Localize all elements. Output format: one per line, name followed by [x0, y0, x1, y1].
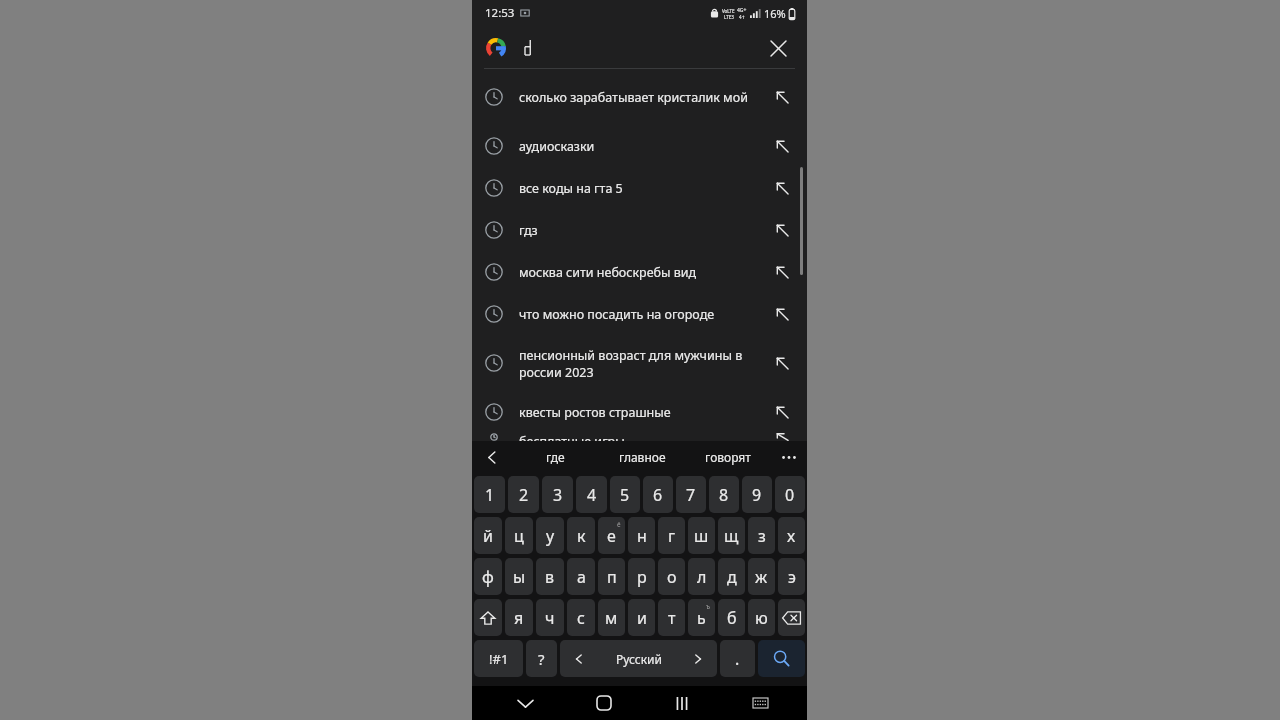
button[interactable]: Home — [565, 686, 643, 720]
staticText: о — [667, 566, 677, 588]
button[interactable]: москва сити небоскребы вид — [472, 251, 807, 293]
staticText: л — [697, 566, 707, 588]
button[interactable]: 1 — [474, 476, 505, 513]
staticText: а — [577, 566, 586, 588]
button[interactable]: 8 — [709, 476, 739, 513]
button[interactable]: что можно посадить на огороде — [472, 293, 807, 335]
staticText: у — [546, 525, 555, 547]
button[interactable]: п — [598, 558, 625, 595]
staticText: ф — [482, 566, 494, 588]
button[interactable]: Insert suggestion — [769, 350, 795, 376]
button[interactable]: Insert suggestion — [769, 301, 795, 327]
staticText: 8 — [719, 484, 729, 506]
button[interactable]: Insert suggestion — [769, 259, 795, 285]
button[interactable]: 2 — [508, 476, 539, 513]
button[interactable]: Recent apps — [643, 686, 721, 720]
staticText: главное — [619, 449, 666, 465]
staticText: все коды на гта 5 — [519, 180, 623, 197]
staticText: бесплатные игры — [519, 433, 625, 441]
staticText: пенсионный возраст для мужчины в россии … — [519, 347, 761, 380]
staticText: 7 — [686, 484, 696, 506]
button[interactable]: Insert suggestion — [769, 217, 795, 243]
staticText: ч — [545, 607, 555, 629]
button[interactable]: Insert suggestion — [769, 399, 795, 425]
button[interactable]: ш — [688, 517, 715, 554]
button[interactable]: 6 — [643, 476, 673, 513]
button[interactable]: з — [748, 517, 775, 554]
button[interactable]: 0 — [775, 476, 805, 513]
button[interactable]: ж — [748, 558, 775, 595]
button[interactable]: все коды на гта 5 — [472, 167, 807, 209]
button[interactable]: й — [474, 517, 502, 554]
button[interactable]: р — [628, 558, 655, 595]
staticText: 4G+ — [737, 7, 747, 14]
button[interactable]: 9 — [742, 476, 772, 513]
staticText: з — [758, 525, 766, 547]
button[interactable]: Previous — [472, 441, 512, 473]
staticText: я — [514, 607, 524, 629]
button[interactable]: пенсионный возраст для мужчины в россии … — [472, 335, 807, 391]
button[interactable]: д — [718, 558, 745, 595]
button[interactable]: Backspace — [778, 599, 805, 636]
button[interactable]: Insert suggestion — [769, 84, 795, 110]
button[interactable]: Insert suggestion — [769, 133, 795, 159]
button[interactable]: э — [778, 558, 805, 595]
staticText: й — [483, 525, 493, 547]
button[interactable]: More options — [771, 441, 807, 473]
button[interactable]: гдз — [472, 209, 807, 251]
button[interactable]: ы — [505, 558, 533, 595]
button[interactable]: щ — [718, 517, 745, 554]
button[interactable]: с — [567, 599, 595, 636]
button[interactable]: бесплатные игры — [472, 433, 807, 441]
button[interactable]: н — [628, 517, 655, 554]
button[interactable]: у — [536, 517, 564, 554]
button[interactable]: . — [720, 640, 755, 677]
button[interactable]: о — [658, 558, 685, 595]
button[interactable]: и — [628, 599, 655, 636]
button[interactable]: 3 — [542, 476, 573, 513]
button[interactable]: ф — [474, 558, 502, 595]
button[interactable]: а — [567, 558, 595, 595]
button[interactable]: сколько зарабатывает кристалик мой — [472, 69, 807, 125]
staticText: щ — [724, 525, 739, 547]
button[interactable]: Clear — [761, 31, 795, 65]
button[interactable]: л — [688, 558, 715, 595]
button[interactable]: Insert suggestion — [769, 433, 795, 441]
button[interactable]: Keyboard layout — [721, 686, 799, 720]
button[interactable]: Insert suggestion — [769, 175, 795, 201]
staticText: 9 — [752, 484, 762, 506]
button[interactable]: ь — [688, 599, 715, 636]
button[interactable]: Shift — [474, 599, 502, 636]
button[interactable]: говорят — [685, 441, 771, 473]
staticText: 0 — [785, 484, 795, 506]
button[interactable]: ч — [536, 599, 564, 636]
button[interactable]: в — [536, 558, 564, 595]
button[interactable]: 7 — [676, 476, 706, 513]
button[interactable]: 4 — [576, 476, 607, 513]
button[interactable]: г — [658, 517, 685, 554]
button[interactable]: Hide keyboard — [486, 686, 565, 720]
button[interactable]: !#1 — [474, 640, 523, 677]
button[interactable]: е — [598, 517, 625, 554]
staticText: и — [637, 607, 647, 629]
staticText: ж — [755, 566, 768, 588]
button[interactable]: ю — [748, 599, 775, 636]
button[interactable]: Русский — [560, 640, 717, 677]
button[interactable]: ? — [526, 640, 557, 677]
button[interactable]: где — [512, 441, 599, 473]
button[interactable]: т — [658, 599, 685, 636]
button[interactable]: я — [505, 599, 533, 636]
button[interactable]: х — [778, 517, 805, 554]
button[interactable]: к — [567, 517, 595, 554]
button[interactable]: Google — [485, 37, 507, 59]
button[interactable]: квесты ростов страшные — [472, 391, 807, 433]
button[interactable]: 5 — [610, 476, 640, 513]
button[interactable]: главное — [599, 441, 685, 473]
button[interactable]: м — [598, 599, 625, 636]
button[interactable]: б — [718, 599, 745, 636]
staticText: р — [637, 566, 647, 588]
button[interactable]: аудиосказки — [472, 125, 807, 167]
button[interactable]: Search — [758, 640, 805, 677]
staticText: ы — [513, 566, 526, 588]
button[interactable]: ц — [505, 517, 533, 554]
